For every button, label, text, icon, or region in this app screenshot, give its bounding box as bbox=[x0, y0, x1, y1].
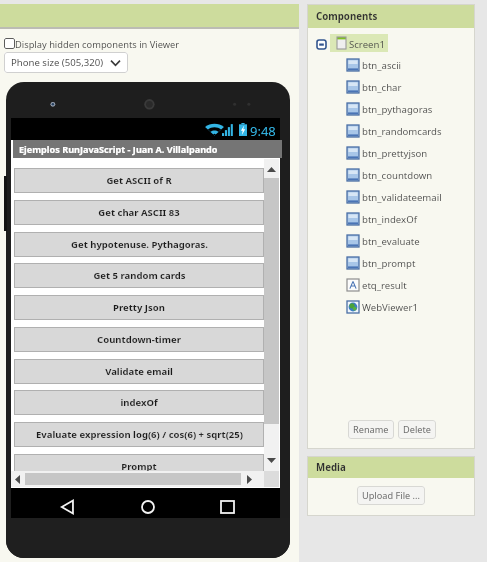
staticText: WebViewer1 bbox=[362, 301, 418, 314]
button[interactable]: Validate email bbox=[14, 359, 264, 384]
staticText: Evaluate expression log(6) / cos(6) + sq… bbox=[36, 428, 243, 441]
staticText: Phone size (505,320) bbox=[11, 56, 104, 69]
staticText: btn_prompt bbox=[362, 257, 416, 270]
staticText: 9:48 bbox=[250, 122, 276, 140]
button[interactable]: Get char ASCII 83 bbox=[14, 200, 264, 225]
staticText: Get ASCII of R bbox=[106, 174, 172, 187]
staticText: btn_countdown bbox=[362, 169, 433, 182]
button[interactable]: indexOf bbox=[14, 390, 264, 415]
button[interactable]: btn_evaluate bbox=[347, 232, 420, 250]
staticText: indexOf bbox=[120, 396, 158, 409]
button[interactable] bbox=[330, 34, 388, 52]
staticText: etq_result bbox=[362, 279, 407, 292]
button[interactable]: Phone size (505,320) bbox=[4, 52, 128, 73]
button[interactable]: btn_indexOf bbox=[347, 210, 417, 228]
staticText: Media bbox=[316, 461, 346, 474]
button[interactable]: Upload File ... bbox=[357, 486, 425, 505]
button[interactable]: btn_countdown bbox=[347, 166, 433, 184]
button[interactable]: btn_randomcards bbox=[347, 122, 442, 140]
staticText: Get char ASCII 83 bbox=[98, 206, 180, 219]
button[interactable]: btn_pythagoras bbox=[347, 100, 433, 118]
staticText: btn_ascii bbox=[362, 59, 402, 72]
staticText: btn_char bbox=[362, 81, 402, 94]
button[interactable]: Display hidden components in Viewer bbox=[4, 38, 15, 49]
button[interactable]: btn_prettyjson bbox=[347, 144, 428, 162]
staticText: Rename bbox=[353, 423, 389, 436]
button[interactable]: Recent apps bbox=[214, 493, 241, 520]
staticText: btn_prettyjson bbox=[362, 147, 428, 160]
staticText: Ejemplos RunJavaScript - Juan A. Villalp… bbox=[19, 143, 218, 155]
button[interactable]: Pretty Json bbox=[14, 295, 264, 320]
button[interactable]: Rename bbox=[348, 420, 394, 439]
staticText: Validate email bbox=[105, 365, 173, 378]
button[interactable]: Countdown-timer bbox=[14, 327, 264, 352]
staticText: Components bbox=[316, 10, 378, 23]
staticText: Prompt bbox=[121, 460, 157, 473]
button[interactable]: Get hypotenuse. Pythagoras. bbox=[14, 232, 264, 257]
button[interactable]: Home bbox=[134, 493, 161, 520]
staticText: Screen1 bbox=[349, 38, 385, 51]
button[interactable]: Delete bbox=[398, 420, 436, 439]
button[interactable]: Back bbox=[54, 493, 81, 520]
staticText: Countdown-timer bbox=[97, 333, 181, 346]
button[interactable]: etq_result bbox=[347, 276, 407, 294]
staticText: btn_evaluate bbox=[362, 235, 420, 248]
staticText: btn_pythagoras bbox=[362, 103, 433, 116]
staticText: btn_randomcards bbox=[362, 125, 442, 138]
button[interactable]: btn_validateemail bbox=[347, 188, 442, 206]
staticText: Pretty Json bbox=[113, 301, 165, 314]
button[interactable]: btn_prompt bbox=[347, 254, 416, 272]
staticText: Get 5 random cards bbox=[93, 269, 186, 282]
button[interactable]: btn_ascii bbox=[347, 56, 402, 74]
staticText: Display hidden components in Viewer bbox=[15, 38, 180, 51]
button[interactable]: Evaluate expression log(6) / cos(6) + sq… bbox=[14, 422, 264, 447]
button[interactable]: WebViewer1 bbox=[347, 298, 418, 316]
button[interactable]: Get 5 random cards bbox=[14, 263, 264, 288]
staticText: Delete bbox=[403, 423, 431, 436]
staticText: Upload File ... bbox=[362, 489, 420, 502]
button[interactable]: Prompt bbox=[14, 454, 264, 479]
button[interactable]: btn_char bbox=[347, 78, 402, 96]
button[interactable]: Get ASCII of R bbox=[14, 168, 264, 193]
staticText: btn_indexOf bbox=[362, 213, 417, 226]
staticText: btn_validateemail bbox=[362, 191, 442, 204]
staticText: Get hypotenuse. Pythagoras. bbox=[71, 238, 208, 251]
